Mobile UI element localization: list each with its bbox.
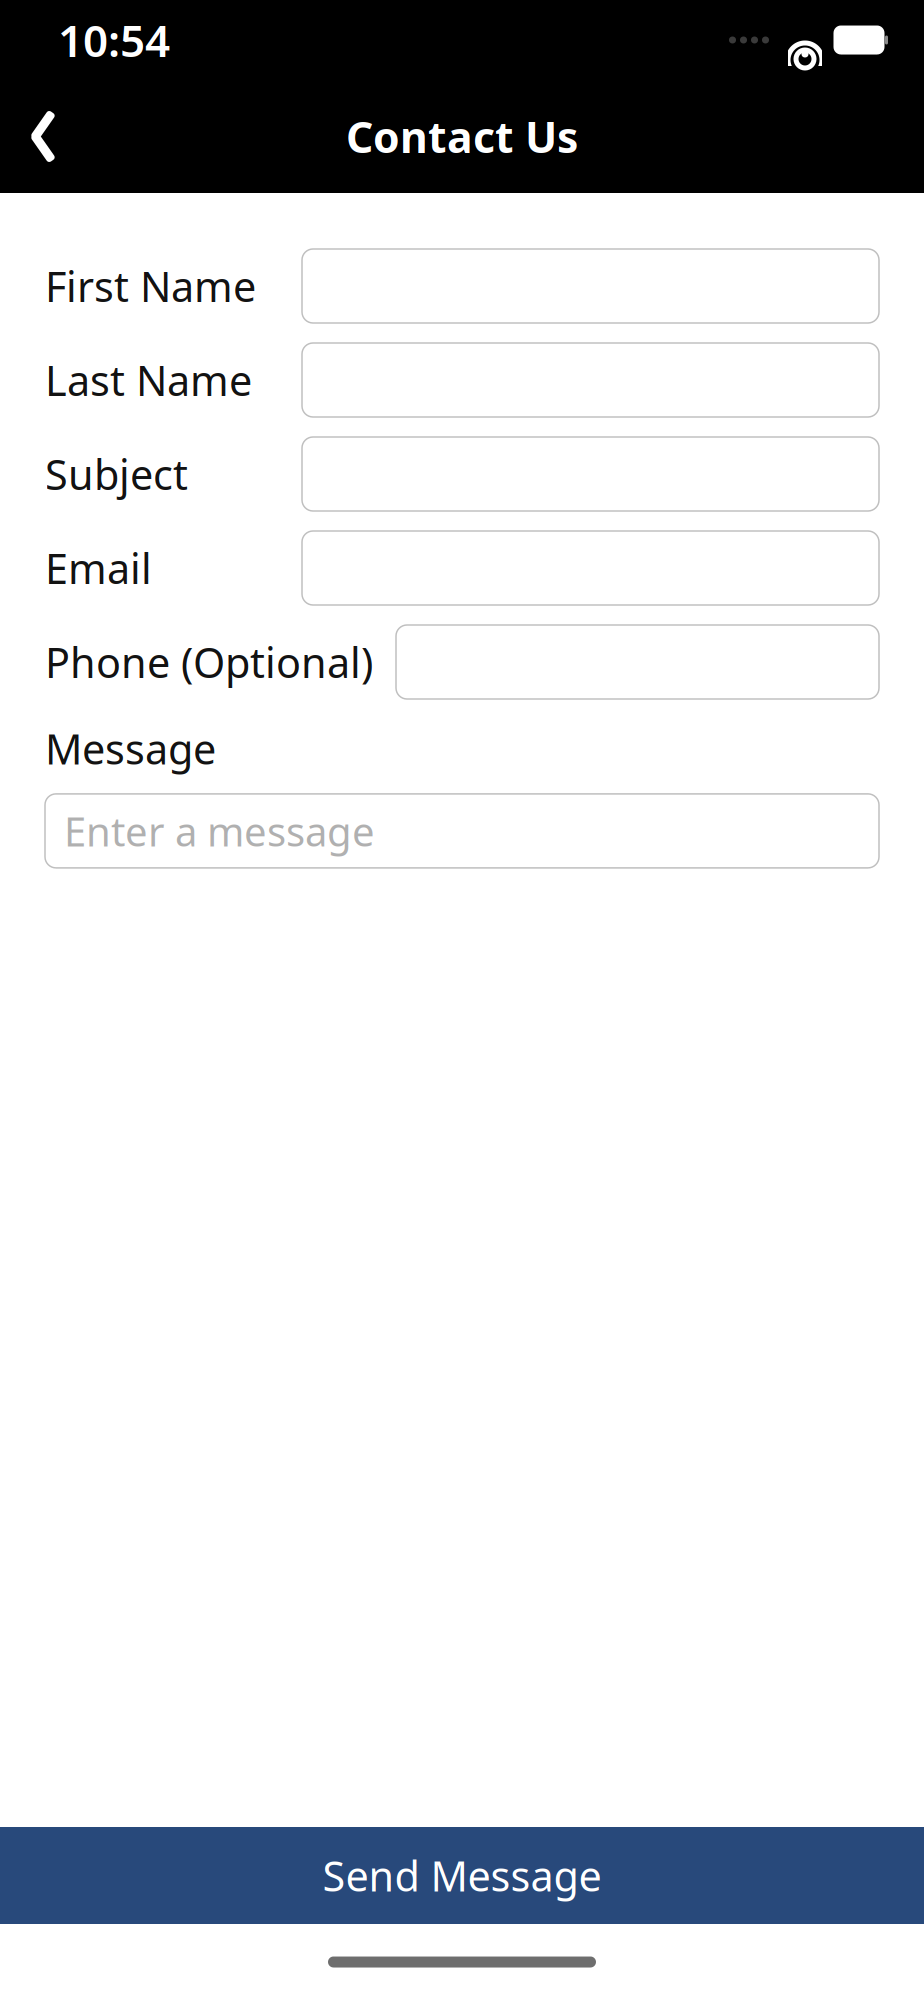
button[interactable]: Phone (Optional) <box>396 625 879 699</box>
staticText: Email <box>45 541 152 595</box>
staticText: Contact Us <box>346 108 578 165</box>
staticText: Send Message <box>322 1848 601 1903</box>
staticText: Subject <box>45 447 188 501</box>
button[interactable]: Email <box>302 531 879 605</box>
staticText: 10:54 <box>58 11 170 69</box>
staticText: First Name <box>45 259 256 313</box>
staticText: Message <box>45 721 216 776</box>
staticText: Last Name <box>45 353 252 407</box>
button[interactable]: Message <box>45 794 879 868</box>
button[interactable]: Last Name <box>302 343 879 417</box>
button[interactable]: First Name <box>302 249 879 323</box>
staticText: Enter a message <box>64 804 375 857</box>
button[interactable]: Back <box>0 80 86 193</box>
button[interactable]: Send Message <box>0 1827 924 1924</box>
button[interactable]: Subject <box>302 437 879 511</box>
staticText: Phone (Optional) <box>45 635 373 689</box>
